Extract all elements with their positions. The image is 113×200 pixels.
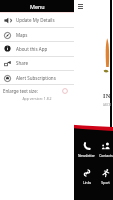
button[interactable]: Maps xyxy=(0,28,74,42)
staticText: App version: 1.8.2 xyxy=(0,96,74,101)
staticText: Links xyxy=(83,180,91,184)
button[interactable]: Share xyxy=(0,56,74,70)
staticText: IN xyxy=(103,92,111,100)
button[interactable]: Open navigation menu xyxy=(76,2,85,11)
staticText: Enlarge text size: xyxy=(3,88,38,94)
button[interactable]: About this App xyxy=(0,42,74,55)
button[interactable]: Alert Subscriptions xyxy=(0,71,74,85)
staticText: Share xyxy=(16,60,29,66)
button[interactable]: Sport xyxy=(96,167,113,189)
button[interactable]: Links xyxy=(77,167,96,189)
button[interactable]: Enlarge text size: xyxy=(0,85,74,96)
staticText: Newsletter xyxy=(78,153,95,157)
staticText: Update My Details xyxy=(16,17,55,23)
button[interactable]: Contacts xyxy=(96,140,113,162)
staticText: ARCH xyxy=(103,103,111,107)
staticText: Contacts xyxy=(99,153,113,157)
staticText: Menu xyxy=(30,3,45,10)
button[interactable]: Update My Details xyxy=(0,13,74,27)
staticText: Maps xyxy=(16,32,28,38)
staticText: Alert Subscriptions xyxy=(16,75,56,81)
button[interactable]: Newsletter xyxy=(77,140,96,162)
staticText: Sport xyxy=(101,180,110,184)
staticText: About this App xyxy=(16,46,48,52)
